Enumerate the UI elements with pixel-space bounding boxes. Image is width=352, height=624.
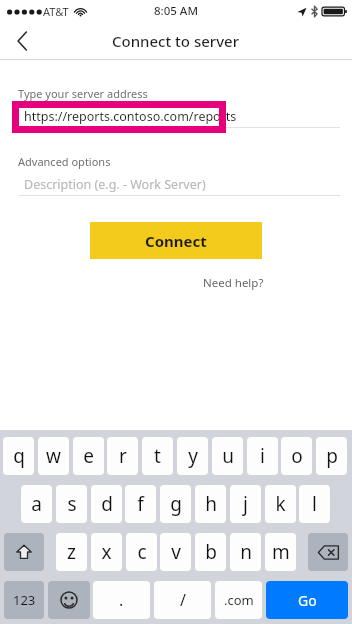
button[interactable]: j <box>230 485 261 523</box>
button[interactable]: s <box>56 485 87 523</box>
staticText: . <box>119 589 124 611</box>
button[interactable]: .com <box>215 581 262 619</box>
staticText: Go <box>298 591 317 610</box>
staticText: v <box>171 539 181 565</box>
staticText: j <box>243 491 248 517</box>
staticText: n <box>240 539 252 565</box>
staticText: r <box>119 443 127 469</box>
button[interactable]: x <box>91 533 122 571</box>
button[interactable]: i <box>247 437 278 475</box>
staticText: l <box>312 491 317 517</box>
staticText: m <box>272 539 290 565</box>
staticText: h <box>205 491 217 517</box>
button[interactable]: Description (e.g. - Work Server) <box>18 172 340 196</box>
button[interactable]: 123 <box>4 581 44 619</box>
staticText: b <box>205 539 217 565</box>
staticText: i <box>260 443 265 469</box>
staticText: Description (e.g. - Work Server) <box>24 176 206 193</box>
button[interactable]: z <box>56 533 87 571</box>
button[interactable]: l <box>299 485 330 523</box>
staticText: u <box>222 443 234 469</box>
staticText: d <box>101 491 113 517</box>
button[interactable]: n <box>230 533 261 571</box>
button[interactable]: Emoji <box>48 581 90 619</box>
staticText: 8:05 AM <box>154 3 198 19</box>
staticText: .com <box>224 591 254 609</box>
button[interactable]: c <box>126 533 157 571</box>
staticText: Connect to server <box>112 31 240 51</box>
staticText: c <box>137 539 147 565</box>
button[interactable]: Connect <box>90 222 262 259</box>
staticText: Need help? <box>203 275 264 291</box>
button[interactable]: a <box>21 485 52 523</box>
button[interactable]: Need help? <box>192 272 264 294</box>
staticText: s <box>67 491 77 517</box>
staticText: p <box>326 443 338 469</box>
button[interactable]: r <box>107 437 138 475</box>
button[interactable]: o <box>281 437 312 475</box>
button[interactable]: . <box>93 581 150 619</box>
staticText: q <box>13 443 25 469</box>
staticText: a <box>31 491 42 517</box>
staticText: o <box>291 443 303 469</box>
staticText: y <box>188 443 198 469</box>
staticText: g <box>170 491 182 517</box>
button[interactable]: y <box>177 437 208 475</box>
staticText: Type your server address <box>18 86 148 101</box>
button[interactable]: m <box>265 533 296 571</box>
button[interactable]: q <box>3 437 34 475</box>
button[interactable]: https://reports.contoso.com/reports <box>18 105 340 128</box>
button[interactable]: g <box>160 485 191 523</box>
button[interactable]: h <box>195 485 226 523</box>
staticText: 123 <box>13 591 36 609</box>
button[interactable]: Shift <box>4 533 44 571</box>
staticText: f <box>137 491 144 517</box>
button[interactable]: Go <box>266 581 348 619</box>
button[interactable]: p <box>316 437 347 475</box>
button[interactable]: / <box>154 581 211 619</box>
button[interactable]: b <box>195 533 226 571</box>
button[interactable]: d <box>91 485 122 523</box>
staticText: x <box>101 539 112 565</box>
button[interactable]: Backspace <box>308 533 348 571</box>
staticText: w <box>46 443 61 469</box>
button[interactable]: v <box>160 533 191 571</box>
button[interactable]: t <box>142 437 173 475</box>
staticText: AT&T <box>43 4 69 19</box>
button[interactable]: Back <box>0 22 44 60</box>
staticText: t <box>154 443 161 469</box>
button[interactable]: u <box>212 437 243 475</box>
staticText: Advanced options <box>18 154 111 169</box>
staticText: / <box>180 589 186 611</box>
staticText: Connect <box>145 231 207 251</box>
button[interactable]: w <box>38 437 69 475</box>
staticText: e <box>83 443 94 469</box>
staticText: z <box>67 539 76 565</box>
staticText: https://reports.contoso.com/reports <box>24 108 237 125</box>
button[interactable]: e <box>73 437 104 475</box>
button[interactable]: k <box>265 485 296 523</box>
button[interactable]: f <box>125 485 156 523</box>
staticText: k <box>275 491 286 517</box>
